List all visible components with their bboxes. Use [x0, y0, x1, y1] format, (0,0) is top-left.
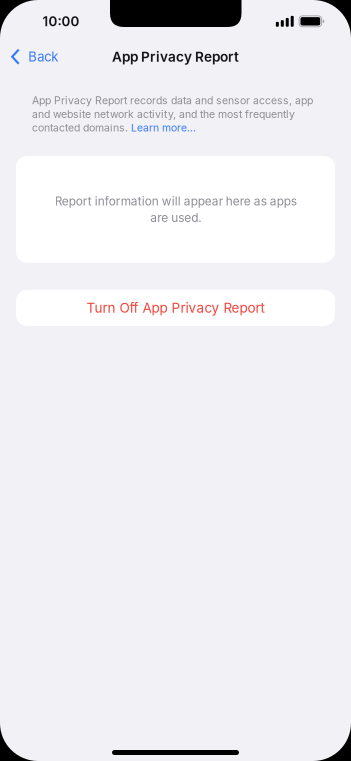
staticText: App Privacy Report [112, 48, 239, 65]
staticText: App Privacy Report records data and sens… [32, 94, 313, 134]
button[interactable]: Turn Off App Privacy Report [0, 290, 351, 326]
staticText: Turn Off App Privacy Report [86, 300, 264, 316]
staticText: Report information will appear here as a… [54, 194, 296, 225]
staticText: 10:00 [42, 13, 79, 29]
staticText: Back [28, 49, 58, 64]
button[interactable]: Back [0, 41, 66, 72]
